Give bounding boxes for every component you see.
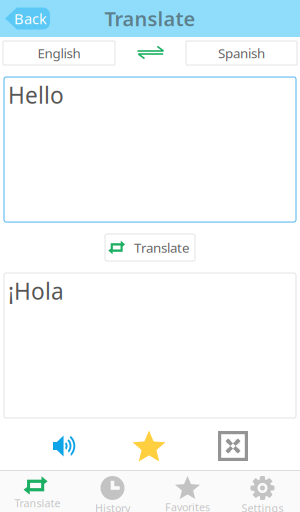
- button[interactable]: History: [75, 470, 150, 512]
- staticText: Translate: [14, 496, 60, 510]
- button[interactable]: Translate: [105, 234, 195, 261]
- staticText: Hello: [8, 80, 64, 110]
- button[interactable]: Swap languages: [121, 41, 179, 65]
- staticText: Back: [14, 9, 47, 28]
- staticText: Settings: [241, 501, 283, 512]
- button[interactable]: English: [3, 41, 115, 65]
- button[interactable]: Settings: [225, 470, 300, 512]
- button[interactable]: Back: [5, 7, 50, 29]
- staticText: Translate: [104, 5, 195, 32]
- staticText: Spanish: [218, 44, 265, 62]
- button[interactable]: Spanish: [186, 41, 297, 65]
- staticText: English: [37, 44, 80, 62]
- button[interactable]: Speak translation: [38, 426, 92, 466]
- staticText: History: [95, 501, 130, 512]
- staticText: ¡Hola: [8, 276, 64, 306]
- button[interactable]: Favorites: [150, 470, 225, 512]
- button[interactable]: Add to favourites: [122, 426, 176, 466]
- button[interactable]: Full screen: [206, 426, 260, 466]
- staticText: Favorites: [165, 500, 210, 512]
- staticText: Translate: [134, 239, 190, 256]
- button[interactable]: Translate: [0, 470, 75, 512]
